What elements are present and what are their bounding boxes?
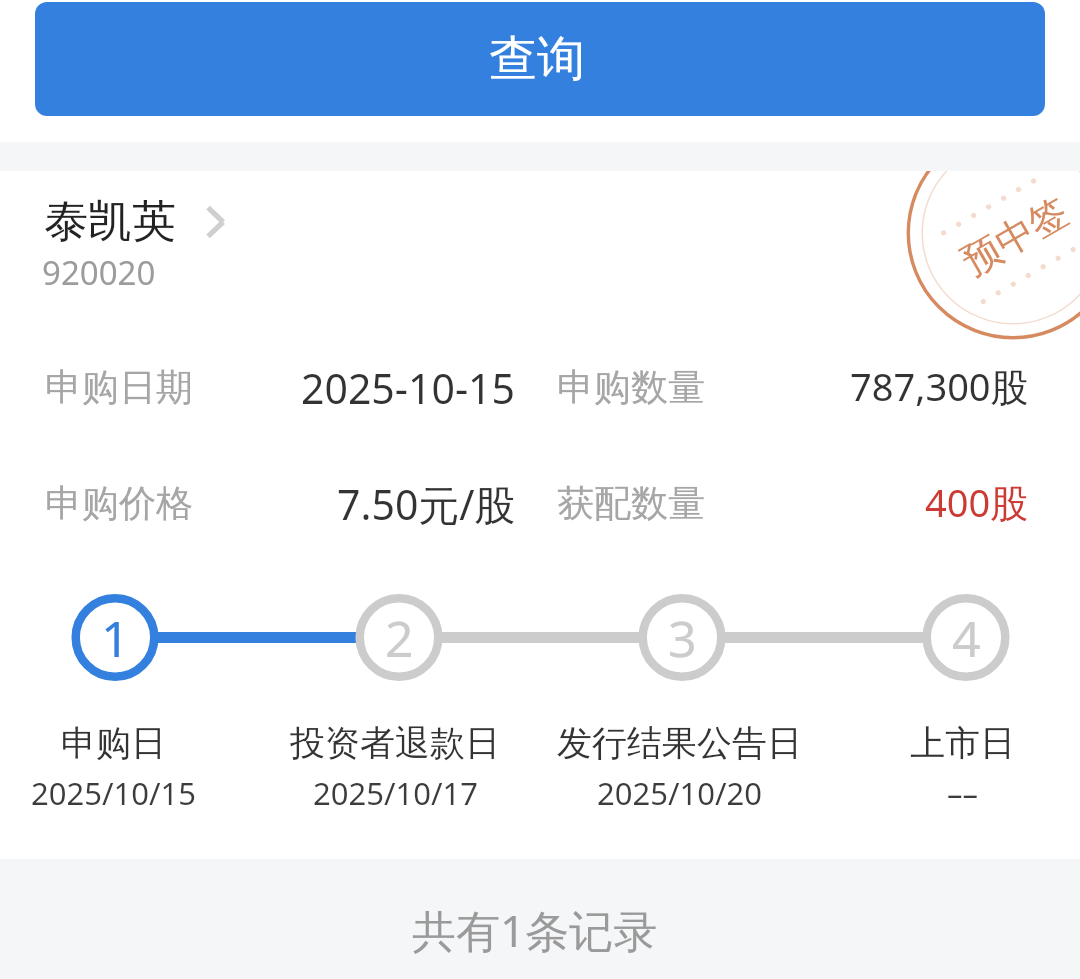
staticText: 获配数量 (557, 480, 705, 527)
staticText: 920020 (42, 250, 156, 295)
button[interactable]: 查询 (35, 2, 1045, 116)
staticText: 发行结果公告日 (557, 721, 802, 765)
staticText: 查询 (489, 29, 585, 89)
staticText: 共有1条记录 (412, 900, 658, 960)
staticText: –– (947, 772, 978, 814)
staticText: 400股 (925, 476, 1029, 526)
other: Open stock detail (203, 204, 239, 240)
staticText: 上市日 (910, 721, 1015, 765)
staticText: 申购数量 (557, 364, 705, 411)
staticText: 3 (668, 604, 697, 672)
staticText: 申购日 (61, 721, 166, 765)
staticText: 申购日期 (45, 364, 193, 411)
button[interactable]: Step 3: 发行结果公告日 (642, 598, 722, 678)
button[interactable]: 泰凯英 (44, 194, 239, 249)
staticText: 泰凯英 (44, 194, 176, 249)
button[interactable]: Step 1: 申购日 (75, 598, 155, 678)
staticText: 2025/10/17 (313, 772, 478, 814)
button[interactable]: Step 4: 上市日 (926, 598, 1006, 678)
staticText: 1 (101, 604, 130, 672)
staticText: 2025/10/20 (597, 772, 762, 814)
staticText: 申购价格 (45, 480, 193, 527)
staticText: 4 (952, 604, 981, 672)
staticText: 787,300股 (850, 360, 1029, 410)
staticText: 7.50元/股 (337, 476, 516, 526)
staticText: 2025/10/15 (31, 772, 196, 814)
staticText: 投资者退款日 (290, 721, 500, 765)
button[interactable]: Step 2: 投资者退款日 (359, 598, 439, 678)
staticText: 2 (385, 604, 414, 672)
staticText: 2025-10-15 (301, 360, 516, 410)
